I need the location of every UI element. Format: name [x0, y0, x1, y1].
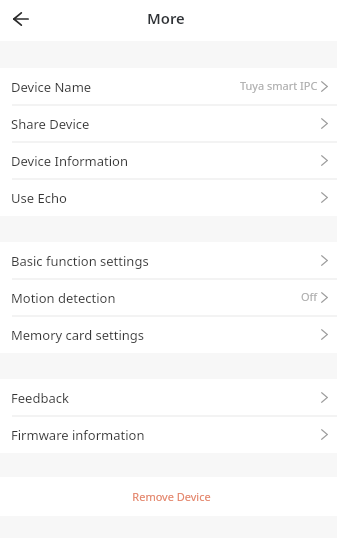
staticText: Off [301, 289, 318, 304]
button[interactable]: Share Device [0, 105, 337, 142]
staticText: Memory card settings [11, 326, 145, 344]
button[interactable]: Memory card settings [0, 316, 337, 353]
staticText: Feedback [11, 389, 69, 407]
staticText: Remove Device [132, 489, 211, 504]
staticText: Firmware information [11, 426, 145, 444]
button[interactable]: Feedback [0, 379, 337, 416]
staticText: Tuya smart IPC [240, 78, 318, 93]
staticText: Device Information [11, 152, 129, 170]
button[interactable]: Basic function settings [0, 242, 337, 279]
button[interactable]: Remove Device [0, 477, 337, 516]
staticText: Motion detection [11, 289, 116, 307]
button[interactable]: Use Echo [0, 179, 337, 216]
staticText: Basic function settings [11, 252, 149, 270]
staticText: Share Device [11, 115, 90, 133]
button[interactable]: Motion detection [0, 279, 337, 316]
button[interactable]: Firmware information [0, 416, 337, 453]
button[interactable]: Device Information [0, 142, 337, 179]
staticText: Device Name [11, 78, 92, 96]
button[interactable]: Back [0, 0, 41, 39]
button[interactable]: Device Name [0, 68, 337, 105]
staticText: Use Echo [11, 189, 67, 207]
staticText: More [147, 8, 185, 28]
